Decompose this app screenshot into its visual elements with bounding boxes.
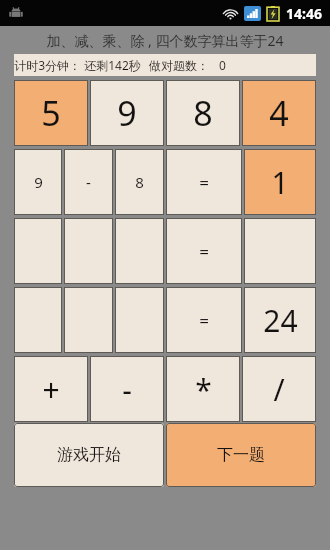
button[interactable]: 4 xyxy=(242,80,316,146)
staticText: 计时3分钟： 还剩142秒 xyxy=(14,57,141,73)
staticText: = xyxy=(199,171,209,194)
button[interactable]: 8 xyxy=(115,149,164,215)
button[interactable]: / xyxy=(242,356,316,422)
button[interactable]: Empty slot xyxy=(14,218,62,284)
button[interactable]: 9 xyxy=(14,149,62,215)
button[interactable]: 游戏开始 xyxy=(14,423,164,487)
staticText: 下一题 xyxy=(217,445,265,465)
staticText: 游戏开始 xyxy=(57,445,121,465)
staticText: 9 xyxy=(117,90,137,136)
button[interactable]: Empty slot xyxy=(64,287,113,353)
button[interactable]: 24 xyxy=(244,287,316,353)
staticText: 8 xyxy=(193,90,213,136)
staticText: 14:46 xyxy=(286,4,322,23)
button[interactable]: = xyxy=(166,218,242,284)
button[interactable]: = xyxy=(166,149,242,215)
staticText: 0 xyxy=(219,57,226,73)
staticText: - xyxy=(86,172,91,192)
staticText: 8 xyxy=(135,172,144,192)
staticText: 9 xyxy=(34,172,43,192)
button[interactable]: 9 xyxy=(90,80,164,146)
button[interactable]: 8 xyxy=(166,80,240,146)
staticText: = xyxy=(199,240,209,263)
button[interactable]: * xyxy=(166,356,240,422)
staticText: 1 xyxy=(271,162,289,203)
button[interactable]: - xyxy=(64,149,113,215)
button[interactable]: - xyxy=(90,356,164,422)
button[interactable]: = xyxy=(166,287,242,353)
staticText: / xyxy=(273,369,285,410)
staticText: 做对题数： xyxy=(149,58,209,73)
staticText: 加、减、乘、除 , 四个数字算出等于24 xyxy=(46,31,284,50)
button[interactable]: Empty slot xyxy=(14,287,62,353)
button[interactable]: Empty slot xyxy=(115,218,164,284)
button[interactable]: + xyxy=(14,356,88,422)
button[interactable]: Empty slot xyxy=(64,218,113,284)
button[interactable]: 1 xyxy=(244,149,316,215)
staticText: - xyxy=(122,369,132,410)
button[interactable]: Empty slot xyxy=(244,218,316,284)
button[interactable]: Empty slot xyxy=(115,287,164,353)
staticText: 4 xyxy=(269,90,289,136)
staticText: = xyxy=(199,309,209,332)
button[interactable]: 5 xyxy=(14,80,88,146)
staticText: 5 xyxy=(41,90,61,136)
staticText: 24 xyxy=(263,300,298,341)
staticText: * xyxy=(195,369,212,410)
button[interactable]: 下一题 xyxy=(166,423,316,487)
staticText: + xyxy=(42,369,60,410)
